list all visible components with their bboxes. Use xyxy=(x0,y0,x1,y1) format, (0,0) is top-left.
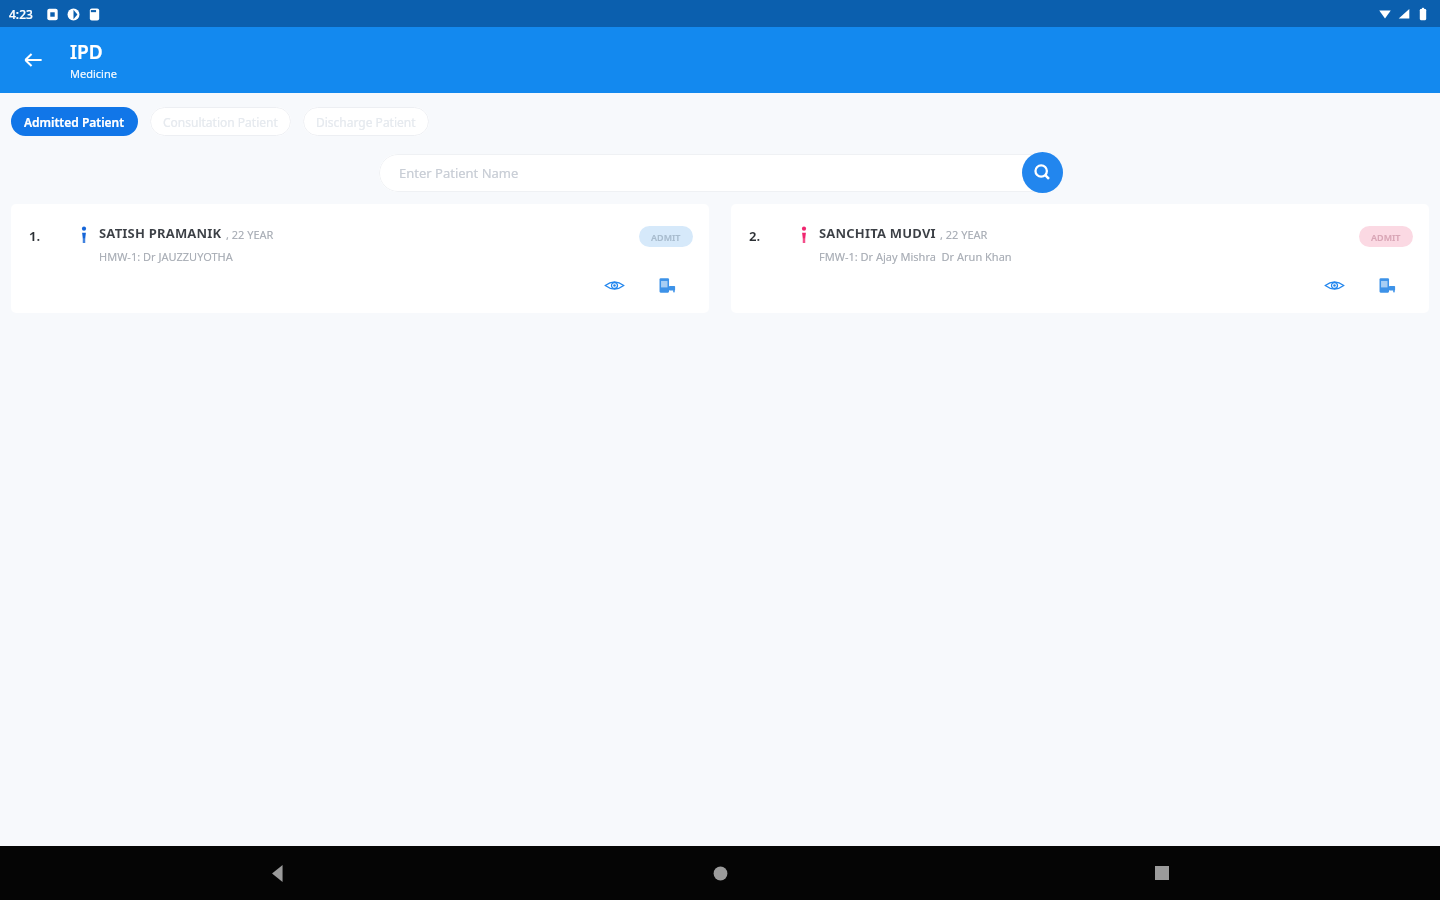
staticText: , 22 YEAR xyxy=(940,227,988,242)
button[interactable]: Recent apps xyxy=(1138,849,1186,897)
button[interactable]: ADMIT xyxy=(1359,226,1413,247)
staticText: Consultation Patient xyxy=(163,114,278,130)
staticText: FMW-1: Dr Ajay Mishra Dr Arun Khan xyxy=(819,249,1012,264)
staticText: HMW-1: Dr JAUZZUYOTHA xyxy=(99,249,233,264)
staticText: ADMIT xyxy=(651,231,681,243)
staticText: SATISH PRAMANIK xyxy=(99,224,222,242)
staticText: Discharge Patient xyxy=(316,114,416,130)
button[interactable]: 2. xyxy=(731,204,1429,313)
button[interactable]: Admitted Patient xyxy=(11,107,138,136)
staticText: Admitted Patient xyxy=(24,114,125,130)
button[interactable]: Search xyxy=(1022,152,1063,193)
staticText: SANCHITA MUDVI xyxy=(819,224,936,242)
button[interactable]: Consultation Patient xyxy=(150,107,291,136)
button[interactable]: View patient xyxy=(1317,268,1351,302)
staticText: 1. xyxy=(29,227,41,245)
staticText: , 22 YEAR xyxy=(226,227,274,242)
staticText: 4:23 xyxy=(9,6,33,22)
staticText: ADMIT xyxy=(1371,231,1401,243)
button[interactable]: Home xyxy=(696,849,744,897)
button[interactable]: View patient xyxy=(597,268,631,302)
button[interactable]: Print report xyxy=(650,268,684,302)
button[interactable]: Print report xyxy=(1370,268,1404,302)
staticText: Enter Patient Name xyxy=(399,164,519,182)
button[interactable]: Back xyxy=(10,37,56,83)
button[interactable]: ADMIT xyxy=(639,226,693,247)
button[interactable]: Discharge Patient xyxy=(303,107,429,136)
staticText: IPD xyxy=(70,39,103,65)
button[interactable]: Enter Patient Name xyxy=(379,154,1061,192)
staticText: Medicine xyxy=(70,66,117,81)
button[interactable]: 1. xyxy=(11,204,709,313)
button[interactable]: Back xyxy=(254,849,302,897)
staticText: 2. xyxy=(749,227,761,245)
